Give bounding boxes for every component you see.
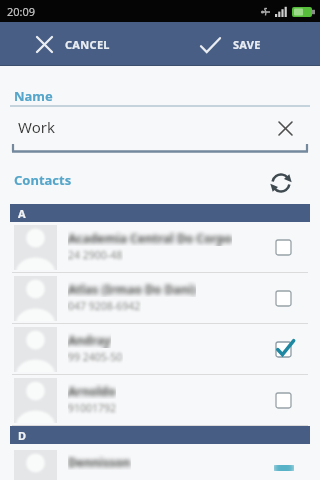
button[interactable]: Atlas (Irmao Do Dani) (0, 273, 320, 324)
staticText: D (18, 428, 27, 443)
button[interactable]: Andray (0, 324, 320, 375)
staticText: Dennisson (68, 454, 131, 470)
button[interactable]: Arnoldo (0, 375, 320, 426)
staticText: 24 2900-48 (68, 248, 123, 262)
button[interactable] (275, 239, 292, 256)
staticText: Andray (68, 332, 111, 348)
staticText: 047 9208-6942 (68, 299, 141, 313)
button[interactable]: Dennisson (0, 444, 320, 480)
staticText: 20:09 (7, 4, 36, 19)
staticText: 91001792 (68, 401, 117, 415)
staticText: Name (14, 87, 53, 105)
button[interactable]: Academia Central Do Corpo (0, 222, 320, 273)
button[interactable] (278, 121, 293, 136)
staticText: CANCEL (65, 37, 110, 52)
staticText: Academia Central Do Corpo (68, 230, 232, 246)
staticText: A (18, 206, 26, 221)
button[interactable] (275, 341, 292, 358)
staticText: 99 2405-50 (68, 350, 123, 364)
staticText: Work (18, 117, 55, 137)
button[interactable] (275, 392, 292, 409)
button[interactable]: Work (0, 107, 320, 153)
button[interactable]: CANCEL (0, 22, 160, 66)
staticText: Atlas (Irmao Do Dani) (68, 281, 196, 297)
staticText: SAVE (233, 37, 261, 52)
staticText: Contacts (14, 171, 72, 189)
button[interactable] (275, 290, 292, 307)
staticText: Arnoldo (68, 383, 116, 399)
button[interactable]: SAVE (160, 22, 320, 66)
button[interactable] (270, 172, 292, 194)
